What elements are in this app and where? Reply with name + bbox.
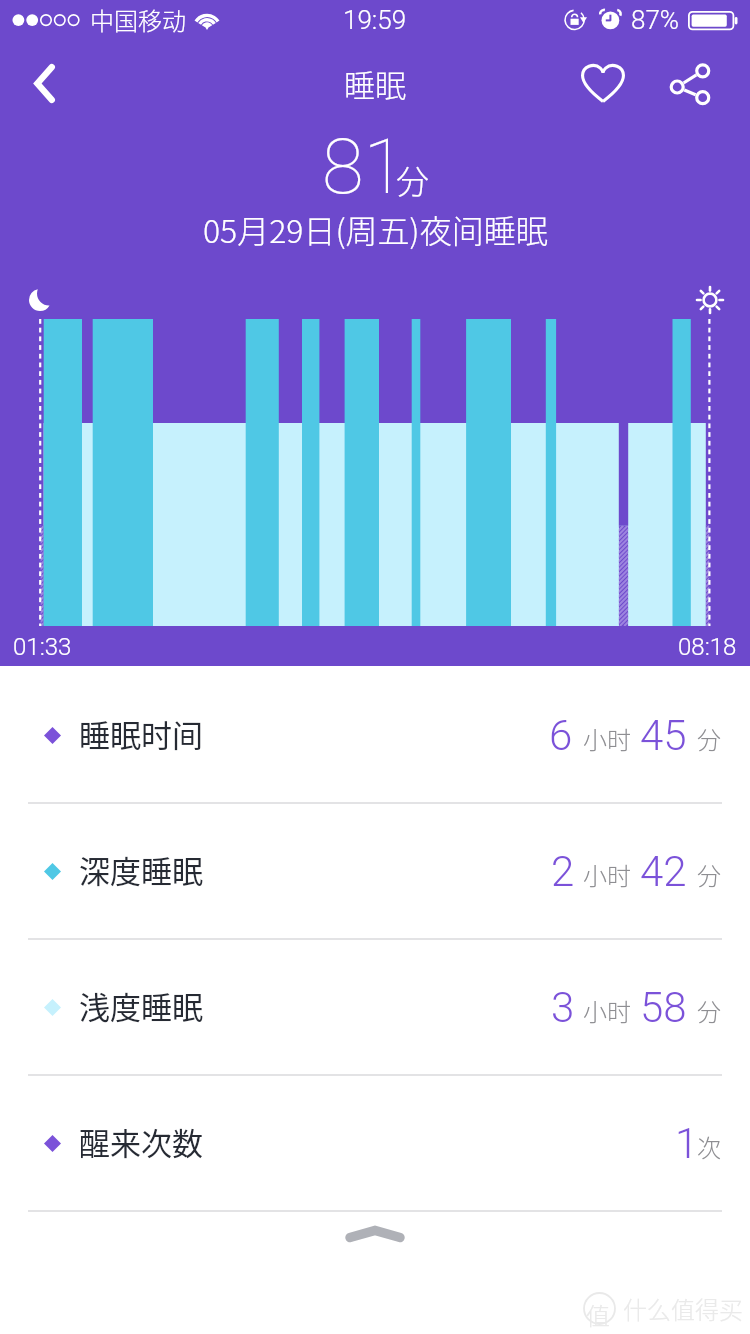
staticText: 19:59 <box>343 5 407 35</box>
button[interactable]: 浅度睡眠 <box>0 940 750 1074</box>
staticText: 睡眠 <box>344 61 406 106</box>
button[interactable]: Back <box>4 51 84 115</box>
staticText: 分 <box>697 993 721 1028</box>
staticText: 浅度睡眠 <box>79 983 203 1028</box>
staticText: 分 <box>697 857 721 892</box>
button[interactable]: 深度睡眠 <box>0 804 750 938</box>
staticText: 值 <box>586 1297 610 1332</box>
button[interactable]: Expand <box>0 1212 750 1282</box>
staticText: 分 <box>697 721 721 756</box>
staticText: 什么值得买 <box>623 1291 743 1326</box>
staticText: 小时 <box>583 721 631 756</box>
staticText: 87% <box>631 5 680 35</box>
staticText: 6 <box>549 711 573 760</box>
staticText: 小时 <box>583 857 631 892</box>
staticText: 睡眠时间 <box>79 711 203 756</box>
button[interactable]: Share <box>652 55 730 119</box>
staticText: 3 <box>551 983 575 1032</box>
staticText: 08:18 <box>678 633 737 661</box>
staticText: 42 <box>640 847 687 896</box>
staticText: 中国移动 <box>90 2 186 37</box>
staticText: 81 <box>322 122 406 211</box>
staticText: 05月29日(周五)夜间睡眠 <box>203 206 548 252</box>
button[interactable]: 醒来次数 <box>0 1076 750 1210</box>
staticText: 深度睡眠 <box>79 847 203 892</box>
button[interactable]: Favorite <box>566 51 640 115</box>
staticText: 45 <box>640 711 687 760</box>
staticText: 1 <box>675 1119 699 1168</box>
staticText: 醒来次数 <box>79 1119 203 1164</box>
staticText: 01:33 <box>13 633 72 661</box>
staticText: 小时 <box>583 993 631 1028</box>
button[interactable]: 睡眠时间 <box>0 668 750 802</box>
staticText: 次 <box>697 1129 721 1164</box>
staticText: 分 <box>396 156 429 204</box>
staticText: 2 <box>551 847 575 896</box>
staticText: 58 <box>640 983 687 1032</box>
